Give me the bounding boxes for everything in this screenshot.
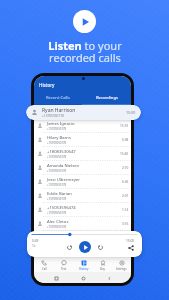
staticText: Hilary Barns (47, 135, 71, 141)
staticText: +15705550178 (47, 141, 67, 145)
staticText: 2:10 (122, 166, 129, 170)
button[interactable]: Recents (52, 274, 60, 282)
staticText: recorded calls (49, 50, 121, 65)
button[interactable]: Play (79, 241, 91, 253)
button[interactable]: History (74, 259, 93, 272)
staticText: 5:08 (122, 138, 129, 142)
staticText: Jessi Ulbermeyer (47, 177, 80, 183)
button[interactable]: Recent Calls (34, 94, 82, 106)
staticText: +15705550178 (47, 183, 67, 187)
staticText: History (39, 82, 55, 88)
staticText: +15705550178 (42, 114, 64, 118)
staticText: Eddie Barian (47, 191, 72, 197)
button[interactable]: Forward 15 (96, 243, 105, 252)
staticText: 15:00 (126, 239, 135, 243)
button[interactable]: +15053596474 (34, 203, 131, 216)
staticText: History (79, 267, 89, 271)
button[interactable]: Hilary Barns (34, 133, 131, 146)
staticText: 15:40 (120, 152, 129, 156)
staticText: +18083530647 (47, 149, 76, 155)
button[interactable]: Rewind 15 (65, 243, 74, 252)
button[interactable]: Eddie Barian (34, 189, 131, 202)
button[interactable]: Play (73, 10, 96, 33)
staticText: 0:49 (32, 239, 39, 243)
button[interactable]: Buy (93, 259, 112, 272)
staticText: +15705550178 (47, 211, 67, 215)
button[interactable]: James Ignacio (34, 119, 131, 132)
button[interactable]: Back (105, 274, 113, 282)
staticText: 2:01 (122, 194, 129, 198)
staticText: Ryan Harrison (42, 107, 76, 114)
staticText: Call (42, 267, 47, 271)
staticText: +15705550178 (47, 127, 67, 131)
staticText: Settings (116, 267, 127, 271)
staticText: James Ignacio (47, 121, 75, 127)
button[interactable]: +18083530647 (34, 147, 131, 160)
staticText: Listen to your (48, 38, 122, 53)
staticText: +15053596474 (47, 205, 76, 211)
button[interactable]: Share (127, 244, 135, 252)
staticText: +15705550178 (47, 155, 67, 159)
staticText: 15:10 (120, 124, 129, 128)
button[interactable]: Text (54, 259, 74, 272)
button[interactable]: Alec Cletus (34, 217, 131, 230)
staticText: +15705550178 (47, 225, 67, 229)
staticText: Recent Calls (46, 95, 70, 101)
button[interactable]: Ryan Harrison (26, 105, 141, 120)
staticText: 1x (32, 244, 36, 248)
button[interactable]: Jessi Ulbermeyer (34, 175, 131, 188)
button[interactable]: Amanda Nielsen (34, 161, 131, 174)
staticText: Recordings (96, 95, 118, 101)
button[interactable]: Settings (112, 259, 131, 272)
staticText: +15705550178 (47, 197, 67, 201)
staticText: Text (61, 267, 67, 271)
staticText: Buy (100, 267, 105, 271)
staticText: 1:14 (122, 208, 129, 212)
staticText: Amanda Nielsen (47, 163, 80, 169)
staticText: 15:00 (126, 110, 136, 115)
staticText: 3:16 (122, 222, 129, 226)
button[interactable]: Recordings (82, 94, 131, 106)
staticText: +15705550178 (47, 169, 67, 173)
button[interactable]: Home (79, 274, 87, 282)
button[interactable]: Call (34, 259, 54, 272)
staticText: 6:36 (122, 180, 129, 184)
staticText: Alec Cletus (47, 219, 69, 225)
